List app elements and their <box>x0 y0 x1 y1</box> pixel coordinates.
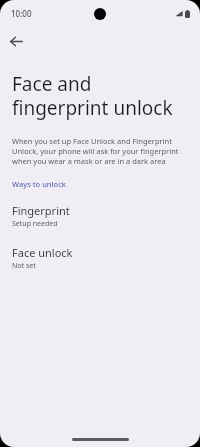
staticText: Setup needed <box>12 219 58 229</box>
staticText: Not set <box>12 261 36 271</box>
button[interactable]: Fingerprint <box>0 201 200 231</box>
staticText: Fingerprint <box>12 203 70 218</box>
staticText: When you set up Face Unlock and Fingerpr… <box>12 136 189 166</box>
staticText: Ways to unlock <box>12 179 67 189</box>
button[interactable]: Ways to unlock <box>0 177 200 191</box>
staticText: Face unlock <box>12 245 73 260</box>
staticText: Face and fingerprint unlock <box>12 71 178 120</box>
button[interactable]: Face unlock <box>0 243 200 273</box>
staticText: 10:00 <box>11 8 32 19</box>
button[interactable]: Back <box>3 28 29 54</box>
